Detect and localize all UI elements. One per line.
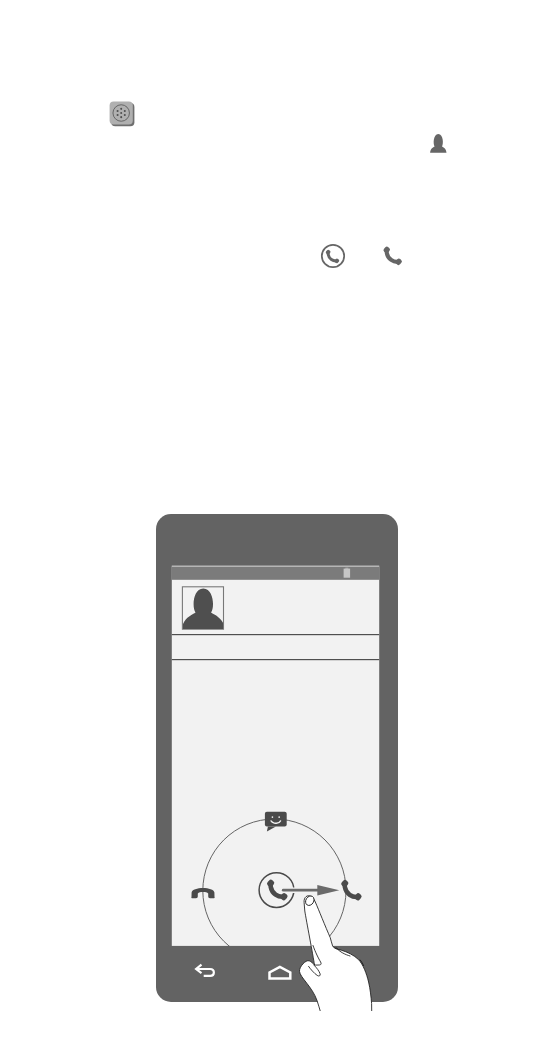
button[interactable]: Ringtone and vibration settings: [107, 99, 135, 127]
button[interactable]: Contact: [427, 133, 450, 155]
button[interactable]: Call: [383, 246, 403, 266]
button[interactable]: Decline call: [190, 886, 216, 901]
button[interactable]: Answer call: [320, 243, 346, 269]
button[interactable]: Home: [266, 962, 294, 982]
button[interactable]: Back: [194, 960, 218, 980]
button[interactable]: Reply with message: [263, 810, 288, 832]
button[interactable]: Answer: [341, 880, 362, 901]
button[interactable]: Slide to answer: [258, 872, 295, 909]
